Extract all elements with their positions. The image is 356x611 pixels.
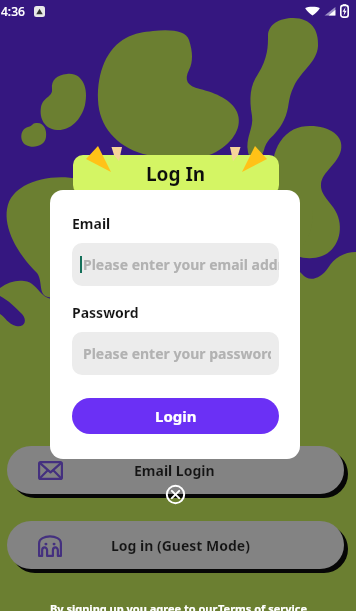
button[interactable]: Please enter your password bbox=[72, 332, 279, 375]
button[interactable]: Log in (Guest Mode) bbox=[7, 521, 344, 569]
staticText: Login bbox=[155, 406, 197, 426]
staticText: Log In bbox=[146, 161, 206, 187]
staticText: Log in (Guest Mode) bbox=[111, 536, 250, 555]
staticText: Password bbox=[72, 303, 139, 322]
button[interactable]: Close bbox=[165, 484, 186, 505]
button[interactable]: Email Login bbox=[7, 446, 344, 494]
staticText: By signing up you agree to our bbox=[50, 601, 218, 611]
staticText: Please enter your password bbox=[83, 344, 271, 363]
staticText: 4:36 bbox=[1, 3, 25, 19]
button[interactable]: Login bbox=[72, 398, 279, 434]
button[interactable]: Terms of service bbox=[218, 601, 307, 611]
staticText: Email bbox=[72, 214, 111, 233]
staticText: Please enter your email address bbox=[83, 255, 279, 274]
staticText: Email Login bbox=[134, 461, 215, 480]
button[interactable]: Log In bbox=[73, 155, 279, 195]
button[interactable]: Please enter your email address bbox=[72, 243, 279, 286]
